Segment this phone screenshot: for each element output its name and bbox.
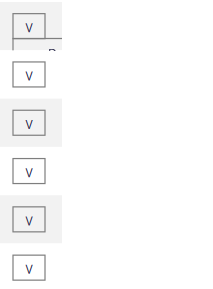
staticText: V <box>25 20 32 36</box>
staticText: V <box>25 165 32 180</box>
button[interactable]: Item 5 <box>0 195 62 243</box>
button[interactable]: Item 4 <box>0 147 62 195</box>
button[interactable]: Item 1 <box>0 2 62 50</box>
button[interactable]: Item 6 <box>0 243 62 289</box>
button[interactable]: Item 2 <box>0 50 62 99</box>
staticText: D <box>48 45 57 61</box>
staticText: V <box>25 116 32 132</box>
staticText: V <box>25 68 32 84</box>
staticText: V <box>25 261 32 277</box>
staticText: V <box>25 213 32 229</box>
button[interactable]: Item 3 <box>0 99 62 147</box>
